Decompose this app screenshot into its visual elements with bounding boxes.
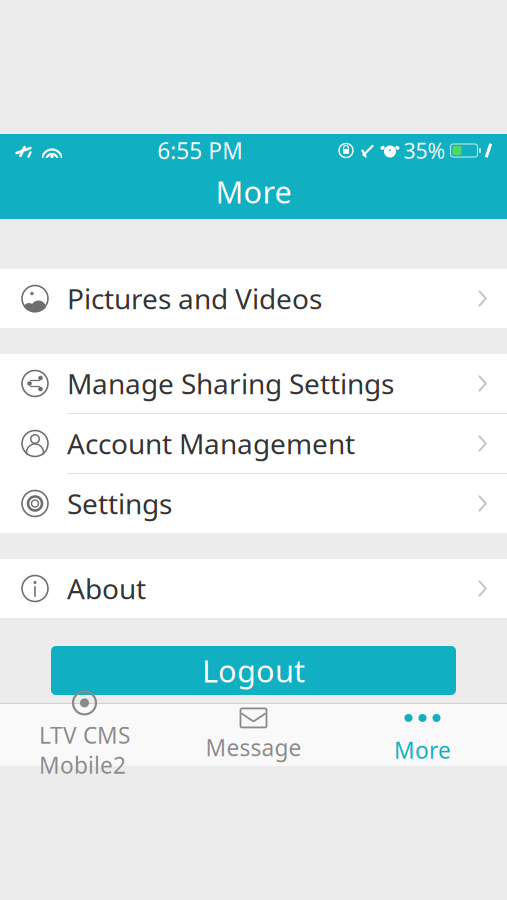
button[interactable]: Pictures and Videos [0, 269, 507, 328]
staticText: 35% [403, 136, 445, 165]
staticText: 6:55 PM [157, 135, 243, 165]
staticText: About [67, 570, 146, 607]
staticText: Settings [67, 485, 172, 522]
button[interactable]: Settings [0, 474, 507, 533]
staticText: Account Management [67, 425, 355, 462]
button[interactable]: About [0, 559, 507, 618]
staticText: Manage Sharing Settings [67, 365, 394, 402]
button[interactable]: Logout [51, 646, 456, 695]
staticText: Pictures and Videos [67, 280, 322, 317]
staticText: More [215, 171, 291, 212]
button[interactable]: LTV CMS Mobile2 [0, 704, 169, 766]
staticText: LTV CMS Mobile2 [39, 720, 130, 780]
button[interactable]: Message [169, 704, 338, 766]
button[interactable]: Manage Sharing Settings [0, 354, 507, 414]
staticText: Message [205, 732, 301, 762]
staticText: Logout [202, 650, 305, 691]
staticText: More [394, 735, 451, 765]
button[interactable]: More [338, 704, 507, 766]
button[interactable]: Account Management [0, 414, 507, 474]
